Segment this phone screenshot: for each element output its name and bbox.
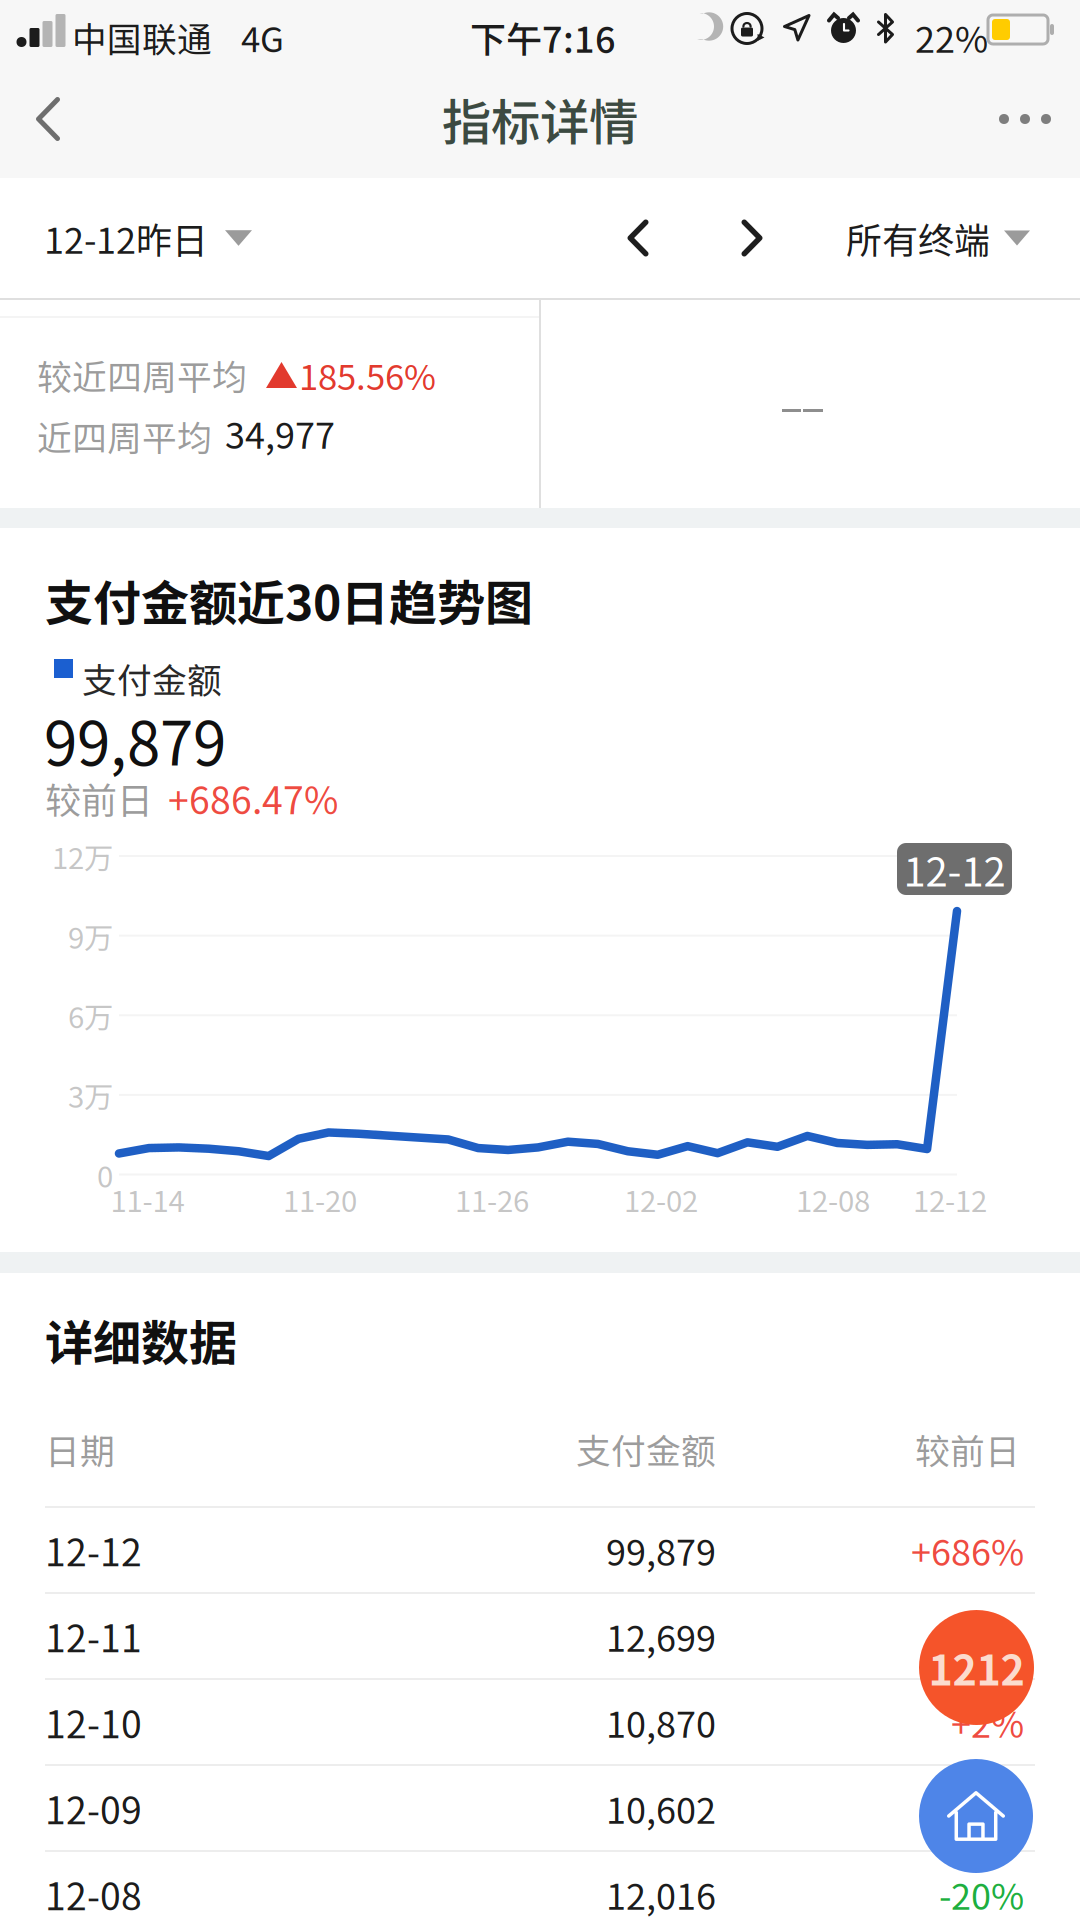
staticText: 支付金额 — [576, 1424, 716, 1474]
staticText: 12-10 — [45, 1695, 142, 1749]
button[interactable]: Next day — [710, 183, 794, 293]
button[interactable]: 12-10 — [0, 1678, 1080, 1764]
staticText: 指标详情 — [442, 83, 638, 155]
staticText: 34,977 — [225, 407, 335, 459]
staticText: 12-11 — [45, 1609, 142, 1663]
button[interactable]: 12-09 — [0, 1764, 1080, 1850]
staticText: 10,602 — [606, 1782, 716, 1834]
button[interactable]: Back — [0, 60, 96, 178]
staticText: 11-26 — [455, 1178, 529, 1220]
button[interactable]: 12-08 — [0, 1850, 1080, 1921]
staticText: 1212 — [928, 1638, 1024, 1697]
staticText: 12,016 — [606, 1868, 716, 1920]
staticText: 0 — [97, 1153, 113, 1196]
button[interactable]: Home — [919, 1759, 1033, 1873]
staticText: 12万 — [52, 835, 113, 877]
staticText: 12-08 — [45, 1867, 142, 1921]
staticText: 12-12 — [903, 840, 1005, 898]
staticText: 支付金额 — [82, 653, 222, 703]
staticText: 4G — [241, 12, 284, 62]
staticText: 近四周平均 — [37, 411, 212, 461]
button[interactable]: 12-12昨日 — [0, 178, 282, 298]
staticText: 12-02 — [624, 1178, 698, 1220]
staticText: 12-08 — [796, 1178, 870, 1220]
staticText: 较前日 — [915, 1424, 1020, 1474]
staticText: 3万 — [68, 1074, 113, 1116]
button[interactable]: Previous day — [596, 183, 680, 293]
staticText: -11% — [939, 1782, 1024, 1834]
button[interactable]: Double 12 promotion — [919, 1610, 1034, 1725]
staticText: +686.47% — [168, 771, 338, 825]
button[interactable]: 12-11 — [0, 1592, 1080, 1678]
staticText: 较前日 — [45, 772, 153, 824]
staticText: 中国联通 — [72, 12, 212, 62]
staticText: 99,879 — [606, 1524, 716, 1576]
staticText: 11-14 — [111, 1178, 185, 1220]
staticText: +16% — [931, 1610, 1024, 1662]
staticText: 22% — [915, 11, 988, 63]
staticText: 下午7:16 — [470, 11, 616, 63]
button[interactable]: More options — [970, 60, 1080, 178]
button[interactable]: 所有终端 — [828, 183, 1048, 293]
staticText: 12-12 — [45, 1523, 142, 1577]
staticText: 详细数据 — [45, 1305, 237, 1374]
staticText: 支付金额近30日趋势图 — [45, 565, 533, 634]
staticText: 日期 — [45, 1424, 115, 1474]
staticText: 6万 — [68, 994, 113, 1037]
staticText: 12,699 — [606, 1610, 716, 1662]
staticText: 185.56% — [299, 350, 436, 400]
staticText: 12-12昨日 — [44, 212, 208, 264]
staticText: 12-09 — [45, 1781, 142, 1835]
staticText: 9万 — [68, 915, 113, 957]
staticText: 12-12 — [913, 1178, 987, 1220]
staticText: 11-20 — [283, 1178, 357, 1220]
staticText: 较近四周平均 — [37, 350, 247, 400]
staticText: 所有终端 — [846, 212, 990, 264]
staticText: +686% — [911, 1524, 1024, 1576]
staticText: 10,870 — [606, 1696, 716, 1748]
staticText: -20% — [939, 1868, 1024, 1920]
button[interactable]: 12-12 — [0, 1506, 1080, 1592]
staticText: 99,879 — [44, 696, 226, 783]
staticText: +2% — [951, 1696, 1024, 1748]
